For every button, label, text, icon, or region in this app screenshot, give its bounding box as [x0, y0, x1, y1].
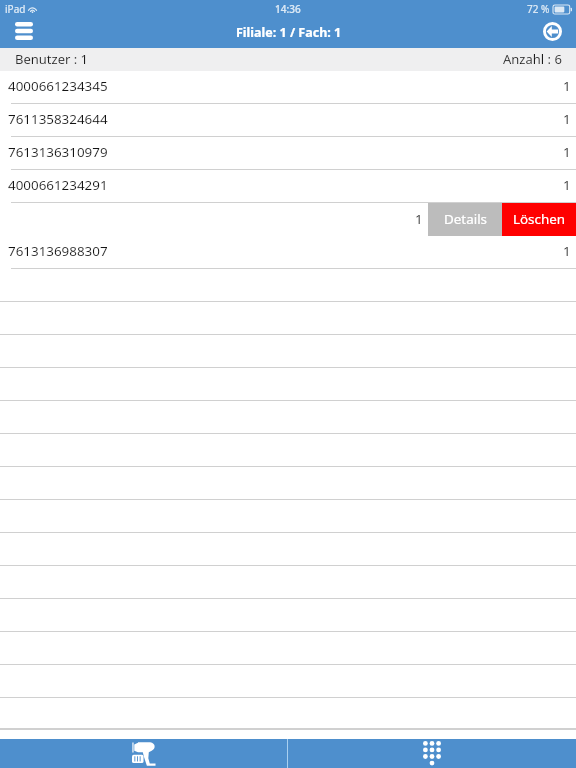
staticText: Löschen: [513, 210, 566, 228]
button[interactable]: Löschen: [502, 203, 576, 236]
button[interactable]: 7611358324644: [0, 104, 576, 137]
staticText: 14:36: [275, 2, 301, 16]
staticText: Details: [444, 210, 487, 228]
staticText: 1: [563, 110, 571, 128]
button[interactable]: 7613136988307: [0, 236, 576, 269]
staticText: Anzahl : 6: [503, 50, 562, 68]
staticText: 72 %: [527, 2, 550, 16]
button[interactable]: 4000661234291: [0, 170, 576, 203]
staticText: 1: [563, 242, 571, 260]
staticText: 1: [563, 176, 571, 194]
staticText: Filiale: 1 / Fach: 1: [236, 24, 342, 41]
staticText: 1: [563, 143, 571, 161]
staticText: iPad: [5, 2, 26, 16]
button[interactable]: Details: [428, 203, 502, 236]
button[interactable]: Keypad: [288, 739, 576, 768]
staticText: 1: [563, 77, 571, 95]
staticText: Benutzer : 1: [15, 50, 89, 68]
staticText: 4000661234291: [8, 176, 108, 194]
staticText: 7613136310979: [8, 143, 108, 161]
button[interactable]: Back: [532, 18, 576, 48]
button[interactable]: Menu: [0, 18, 48, 48]
staticText: 1: [415, 210, 423, 228]
staticText: 7613136988307: [8, 242, 108, 260]
button[interactable]: Scan barcode: [0, 739, 287, 768]
button[interactable]: 1: [0, 203, 428, 236]
button[interactable]: 7613136310979: [0, 137, 576, 170]
button[interactable]: 4000661234345: [0, 71, 576, 104]
staticText: 4000661234345: [8, 77, 108, 95]
staticText: 7611358324644: [8, 110, 108, 128]
